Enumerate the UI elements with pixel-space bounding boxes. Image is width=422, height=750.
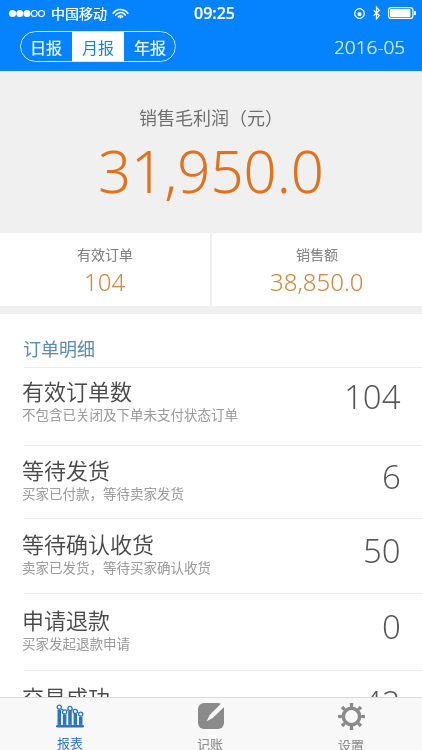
staticText: 09:25 — [194, 2, 235, 24]
staticText: 104 — [344, 374, 401, 419]
button[interactable]: 交易成功 — [0, 671, 422, 746]
staticText: 有效订单数 — [22, 374, 133, 406]
button[interactable]: Settings — [281, 698, 422, 750]
staticText: 38,850.0 — [270, 265, 364, 298]
staticText: 等待发货 — [22, 453, 111, 485]
staticText: 买家发起退款申请 — [22, 633, 130, 653]
button[interactable]: 订单明细 — [0, 314, 422, 367]
button[interactable]: 申请退款 — [0, 594, 422, 670]
button[interactable]: 销售额 — [212, 233, 422, 306]
staticText: 31,950.0 — [98, 131, 324, 210]
staticText: 申请退款 — [22, 603, 111, 635]
staticText: 月报 — [82, 35, 115, 58]
staticText: 有效订单 — [77, 244, 133, 264]
staticText: 买家确认收货 — [22, 710, 103, 730]
staticText: 不包含已关闭及下单未支付状态订单 — [22, 404, 238, 424]
button[interactable]: 2016-05 — [334, 34, 406, 60]
staticText: 销售额 — [296, 244, 338, 264]
staticText: 卖家已发货，等待买家确认收货 — [22, 557, 211, 577]
staticText: 销售毛利润（元） — [139, 104, 283, 130]
staticText: 0 — [382, 604, 401, 649]
button[interactable]: 等待发货 — [0, 446, 422, 518]
button[interactable]: 年报 — [124, 31, 176, 62]
staticText: 买家已付款，等待卖家发货 — [22, 483, 184, 503]
staticText: 年报 — [134, 35, 167, 58]
button[interactable]: 月报 — [72, 31, 124, 62]
button[interactable]: 日报 — [20, 31, 72, 62]
staticText: 中国移动 — [51, 3, 107, 23]
button[interactable]: 等待确认收货 — [0, 519, 422, 593]
staticText: 50 — [363, 528, 401, 573]
staticText: 交易成功 — [22, 680, 111, 712]
staticText: 设置 — [338, 735, 365, 750]
staticText: 等待确认收货 — [22, 527, 155, 559]
staticText: 订单明细 — [23, 335, 95, 361]
staticText: 104 — [84, 265, 126, 298]
staticText: 6 — [382, 454, 401, 499]
button[interactable]: Bookkeeping — [140, 698, 281, 750]
staticText: 42 — [363, 680, 401, 725]
button[interactable]: 有效订单 — [0, 233, 210, 306]
button[interactable]: 有效订单数 — [0, 368, 422, 445]
staticText: 报表 — [57, 733, 84, 750]
button[interactable]: Reports — [0, 698, 140, 750]
staticText: 记账 — [197, 734, 224, 750]
staticText: 日报 — [30, 35, 63, 58]
